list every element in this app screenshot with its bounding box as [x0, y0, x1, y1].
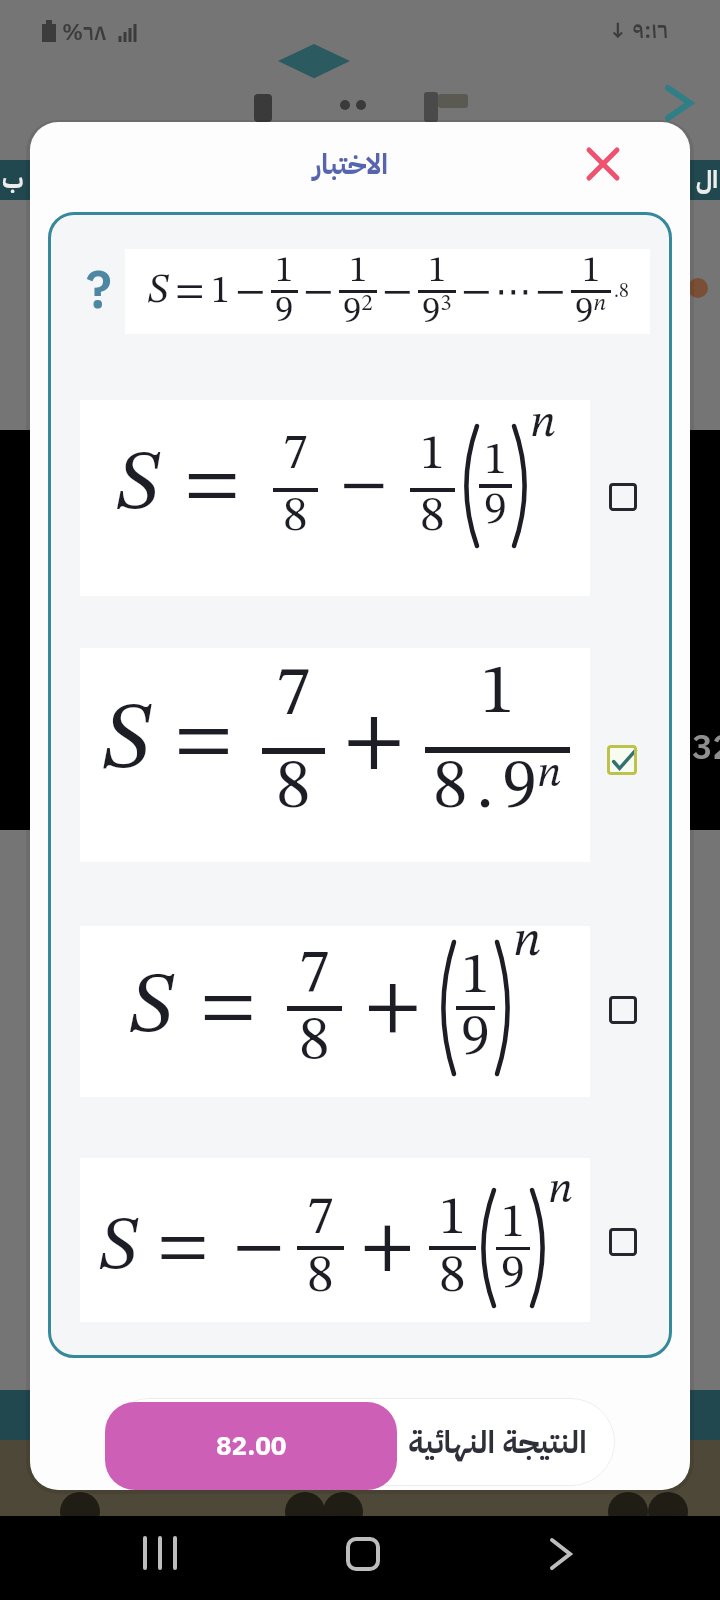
staticText: 93 — [422, 293, 452, 330]
staticText: = — [157, 1212, 209, 1284]
staticText: 1 — [349, 253, 368, 290]
staticText: 1 — [428, 253, 447, 290]
staticText: ب — [2, 162, 24, 198]
staticText: 1 — [275, 253, 294, 290]
button[interactable] — [607, 745, 637, 775]
staticText: 7 — [283, 430, 308, 480]
button[interactable]: S — [80, 926, 590, 1097]
staticText: 8 — [283, 492, 308, 542]
staticText: ال — [696, 162, 719, 198]
button[interactable] — [609, 996, 637, 1024]
button[interactable]: S — [80, 400, 590, 596]
staticText: 9n — [575, 293, 607, 330]
staticText: S — [98, 1211, 139, 1286]
staticText: 9 — [484, 488, 507, 534]
staticText: − — [535, 271, 566, 313]
staticText: 9 — [501, 1250, 525, 1298]
staticText: S — [115, 444, 160, 528]
staticText: n — [548, 1168, 573, 1212]
staticText: 1 — [420, 430, 445, 480]
staticText: = — [175, 271, 205, 312]
staticText: n — [513, 917, 542, 967]
staticText: + — [360, 1210, 415, 1286]
button[interactable] — [609, 483, 637, 511]
staticText: = — [200, 969, 257, 1047]
button[interactable]: S — [80, 648, 590, 862]
staticText: 8 — [276, 754, 311, 824]
staticText: 92 — [343, 293, 373, 330]
staticText: − — [461, 271, 492, 313]
staticText: = — [184, 447, 241, 525]
staticText: ⋯ — [495, 270, 532, 313]
staticText: 1 — [484, 438, 507, 484]
staticText: ↓ ٩:١٦ — [608, 14, 669, 47]
staticText: − — [382, 271, 413, 313]
staticText: = — [174, 701, 234, 783]
staticText: .8 — [614, 282, 629, 302]
staticText: 1 — [439, 1192, 466, 1246]
staticText: 1 — [211, 273, 230, 311]
staticText: 9 — [275, 293, 294, 330]
staticText: النتيجة النهائية — [408, 1419, 587, 1466]
staticText: 8 — [299, 1011, 330, 1073]
staticText: 8 . 9n — [433, 753, 562, 824]
staticText: − — [235, 271, 266, 313]
button[interactable] — [609, 1228, 637, 1256]
staticText: 7 — [307, 1192, 334, 1246]
staticText: 1 — [582, 253, 601, 290]
staticText: n — [530, 401, 556, 447]
staticText: الاختبار — [313, 144, 388, 186]
staticText: S — [147, 271, 169, 312]
staticText: + — [343, 699, 405, 785]
staticText: 7 — [299, 944, 330, 1006]
staticText: 1 — [461, 948, 490, 1006]
button[interactable] — [346, 1537, 380, 1571]
button[interactable]: 82.00 — [105, 1402, 397, 1490]
staticText: 7 — [276, 660, 311, 730]
staticText: − — [340, 453, 388, 519]
staticText: 8 — [420, 492, 445, 542]
staticText: 8 — [439, 1250, 466, 1304]
staticText: 32 — [692, 722, 720, 773]
staticText: 9 — [461, 1010, 490, 1068]
button[interactable] — [577, 138, 629, 190]
staticText: − — [233, 1212, 285, 1284]
button[interactable]: S — [125, 249, 650, 334]
button[interactable]: S — [80, 1158, 590, 1322]
staticText: + — [364, 968, 422, 1048]
staticText: 82.00 — [216, 1427, 287, 1466]
staticText: 1 — [501, 1199, 525, 1247]
staticText: %٦٨ — [62, 16, 107, 49]
staticText: 8 — [307, 1250, 334, 1304]
staticText: S — [128, 965, 174, 1051]
staticText: 1 — [480, 659, 515, 729]
staticText: S — [101, 695, 152, 789]
staticText: − — [303, 271, 334, 313]
staticText: ? — [86, 252, 112, 330]
